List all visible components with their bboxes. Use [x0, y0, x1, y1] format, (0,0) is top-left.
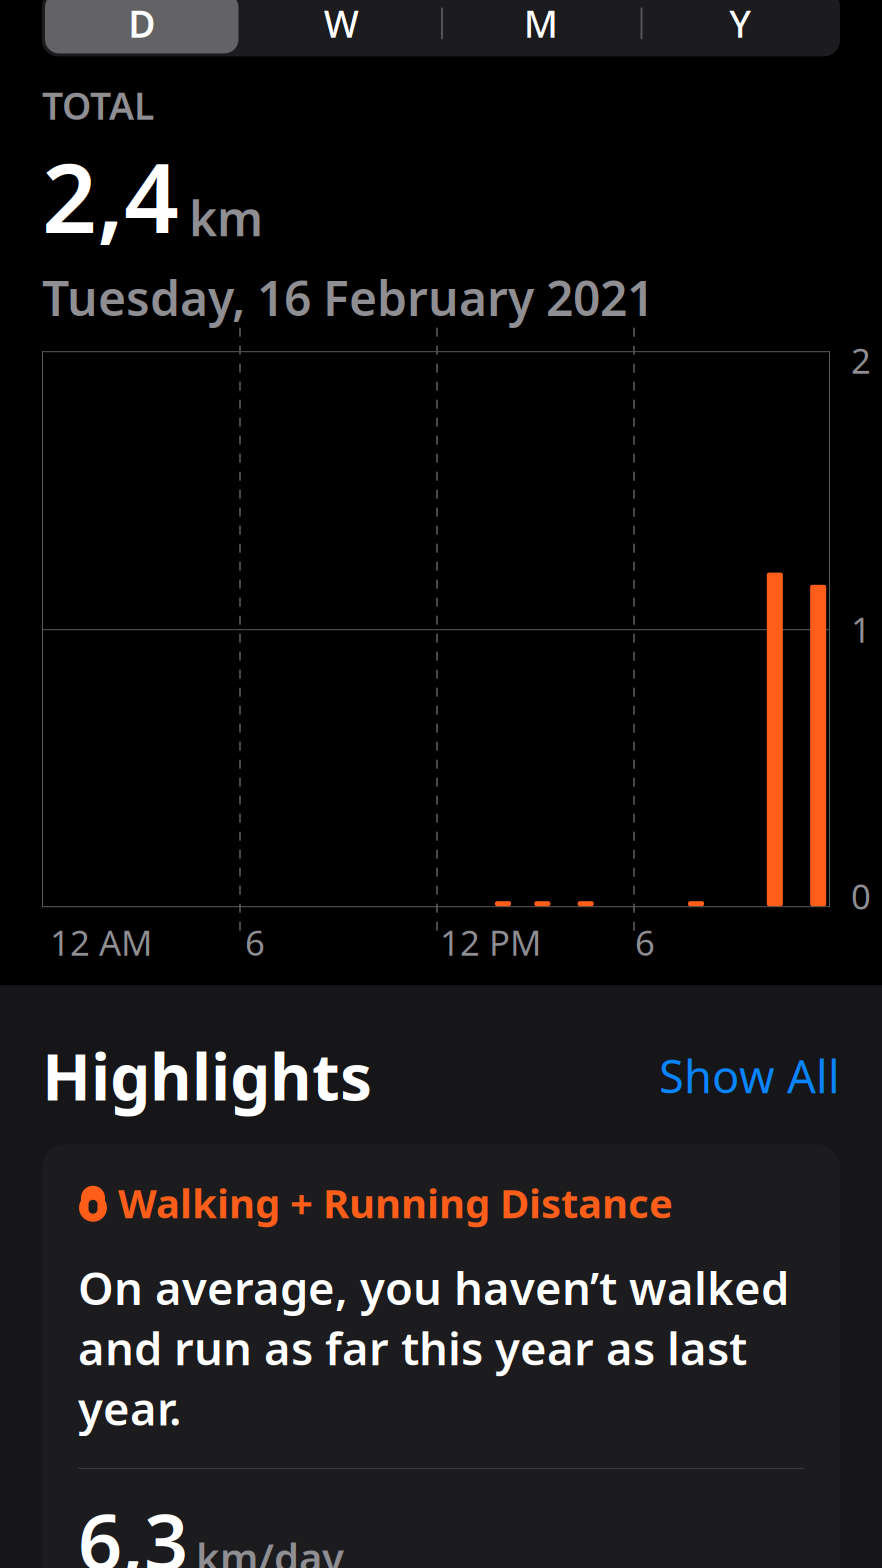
- staticText: TOTAL: [42, 80, 154, 130]
- staticText: D: [128, 0, 155, 48]
- staticText: Y: [729, 0, 751, 48]
- staticText: On average, you haven’t walked and run a…: [78, 1257, 789, 1438]
- staticText: Tuesday, 16 February 2021: [42, 265, 654, 329]
- staticText: 2: [851, 337, 871, 383]
- staticText: Highlights: [42, 1033, 372, 1118]
- button[interactable]: Walking + Running Distance: [42, 1144, 840, 1568]
- staticText: km: [189, 186, 263, 249]
- staticText: 12 AM: [50, 919, 152, 965]
- staticText: 0: [851, 873, 871, 919]
- staticText: 12 PM: [440, 919, 541, 965]
- staticText: Show All: [659, 1046, 840, 1106]
- button[interactable]: M: [441, 0, 640, 56]
- staticText: 1: [851, 606, 871, 652]
- staticText: 6: [635, 919, 655, 965]
- staticText: M: [524, 0, 558, 48]
- button[interactable]: D: [42, 0, 241, 56]
- button[interactable]: W: [241, 0, 441, 56]
- button[interactable]: Show All: [659, 1040, 840, 1112]
- staticText: 6: [245, 919, 265, 965]
- staticText: 6,3: [78, 1489, 188, 1568]
- staticText: 2,4: [42, 132, 179, 259]
- staticText: W: [324, 0, 359, 48]
- button[interactable]: Y: [640, 0, 840, 56]
- staticText: km/day: [196, 1530, 344, 1568]
- staticText: Walking + Running Distance: [118, 1176, 673, 1229]
